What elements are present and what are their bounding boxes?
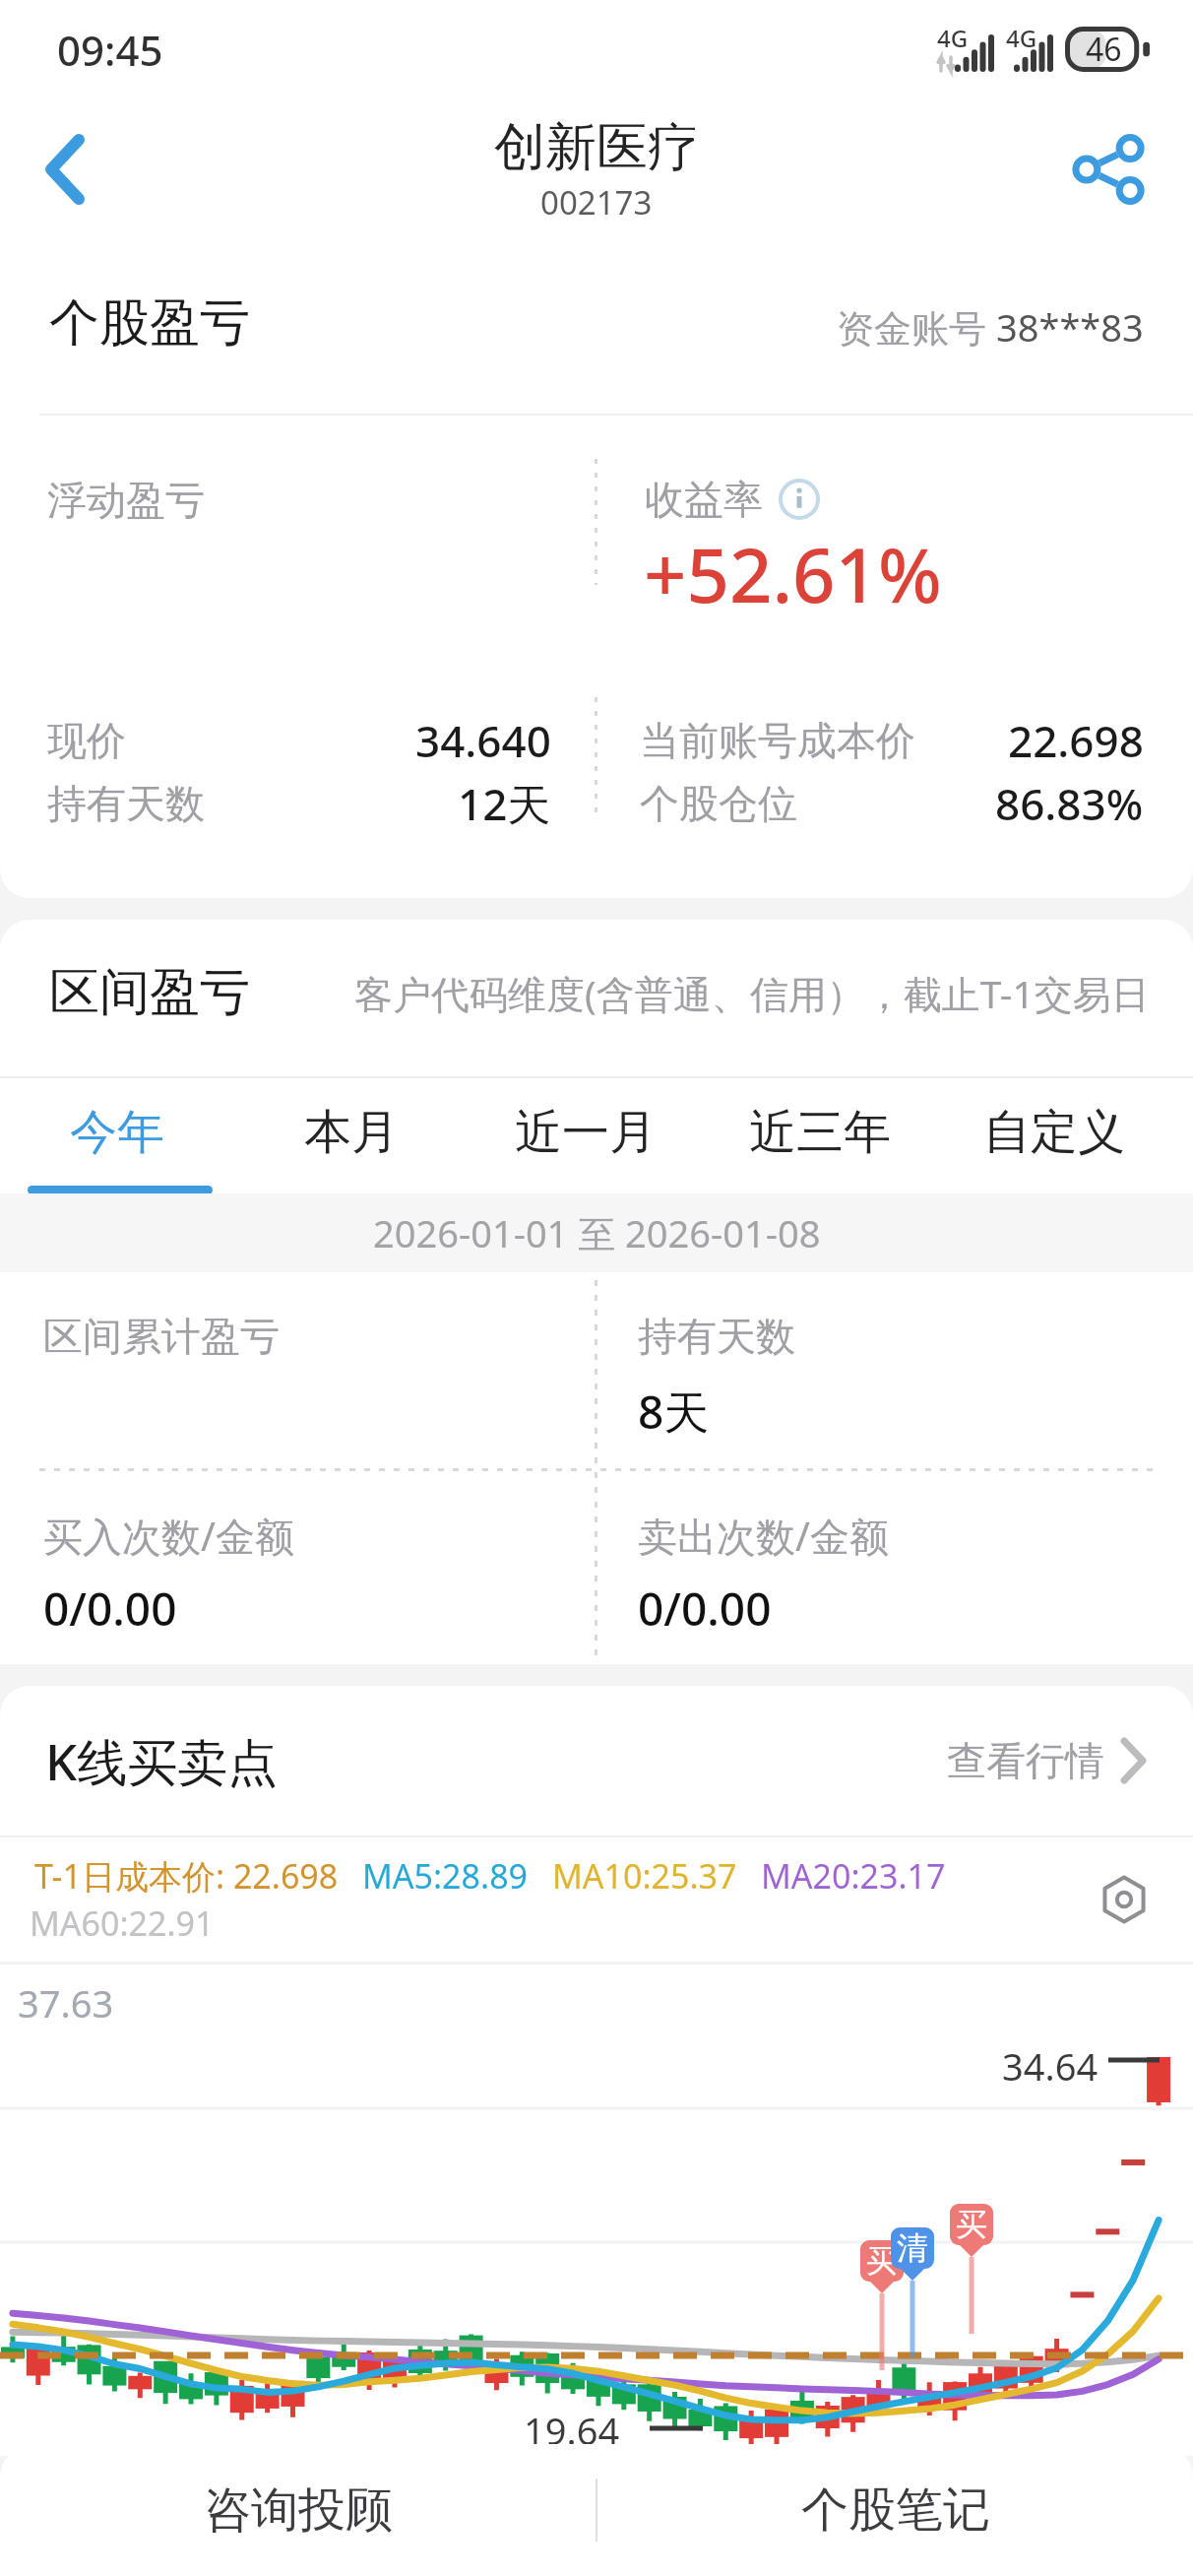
staticText: 今年 (70, 1103, 164, 1162)
staticText: 34.64 (1002, 2040, 1099, 2092)
staticText: 本月 (304, 1103, 399, 1162)
staticText: 区间盈亏 (49, 961, 250, 1024)
staticText: 近三年 (749, 1103, 891, 1162)
staticText: 客户代码维度(含普通、信用），截止T-1交易日 (354, 967, 1150, 1019)
staticText: 自定义 (983, 1103, 1125, 1162)
staticText: 个股笔记 (801, 2480, 990, 2540)
staticText: 资金账号 (837, 301, 996, 353)
staticText: 卖出次数/金额 (638, 1509, 889, 1563)
staticText: 37.63 (18, 1977, 114, 2029)
staticText: MA60:22.91 (30, 1900, 215, 1946)
staticText: 09:45 (57, 22, 163, 78)
staticText: 12天 (458, 774, 551, 833)
button[interactable]: K线买卖点 (45, 1686, 1148, 1835)
staticText: 创新医疗 (494, 115, 699, 180)
staticText: 0/0.00 (43, 1578, 177, 1640)
staticText: 个股盈亏 (49, 291, 250, 354)
button[interactable]: 今年 (42, 1083, 192, 1182)
staticText: 38***83 (996, 301, 1144, 353)
staticText: 浮动盈亏 (47, 476, 205, 525)
staticText: 持有天数 (638, 1312, 795, 1361)
staticText: 个股仓位 (640, 779, 797, 828)
staticText: 22.698 (1008, 711, 1144, 770)
staticText: 区间累计盈亏 (43, 1312, 280, 1361)
staticText: 买 (866, 2241, 898, 2281)
staticText: 86.83% (995, 774, 1144, 833)
staticText: 46 (1086, 28, 1122, 71)
staticText: 现价 (47, 716, 126, 765)
staticText: 收益率 (645, 475, 763, 524)
button[interactable]: 近三年 (720, 1083, 920, 1182)
staticText: 8天 (638, 1381, 710, 1443)
button[interactable]: 咨询投顾 (0, 2444, 596, 2576)
button[interactable]: 自定义 (954, 1083, 1155, 1182)
staticText: +52.61% (644, 523, 942, 625)
staticText: 19.64 (524, 2405, 620, 2456)
staticText: 当前账号成本价 (640, 716, 915, 765)
button[interactable]: Back (6, 108, 124, 230)
button[interactable]: Chart settings (1095, 1870, 1154, 1929)
button[interactable]: Share (1049, 110, 1167, 228)
button[interactable]: 近一月 (485, 1083, 686, 1182)
staticText: 0/0.00 (638, 1578, 772, 1640)
staticText: MA10:25.37 (552, 1853, 737, 1899)
button[interactable]: 本月 (277, 1083, 426, 1182)
staticText: 4G (937, 22, 969, 54)
staticText: MA5:28.89 (362, 1853, 529, 1899)
staticText: MA20:23.17 (761, 1853, 946, 1899)
staticText: 近一月 (515, 1103, 657, 1162)
staticText: 清 (897, 2228, 928, 2268)
staticText: 4G (1006, 22, 1037, 54)
staticText: 买入次数/金额 (43, 1509, 294, 1563)
button[interactable]: 个股笔记 (597, 2444, 1193, 2576)
staticText: 持有天数 (47, 779, 205, 828)
staticText: K线买卖点 (45, 1726, 279, 1795)
staticText: 2026-01-01 至 2026-01-08 (373, 1207, 821, 1258)
staticText: 34.640 (415, 711, 551, 770)
staticText: 查看行情 (947, 1736, 1104, 1785)
staticText: T-1日成本价: 22.698 (34, 1853, 339, 1899)
staticText: 咨询投顾 (204, 2480, 393, 2540)
staticText: 买 (956, 2205, 987, 2244)
staticText: 002173 (540, 180, 653, 225)
